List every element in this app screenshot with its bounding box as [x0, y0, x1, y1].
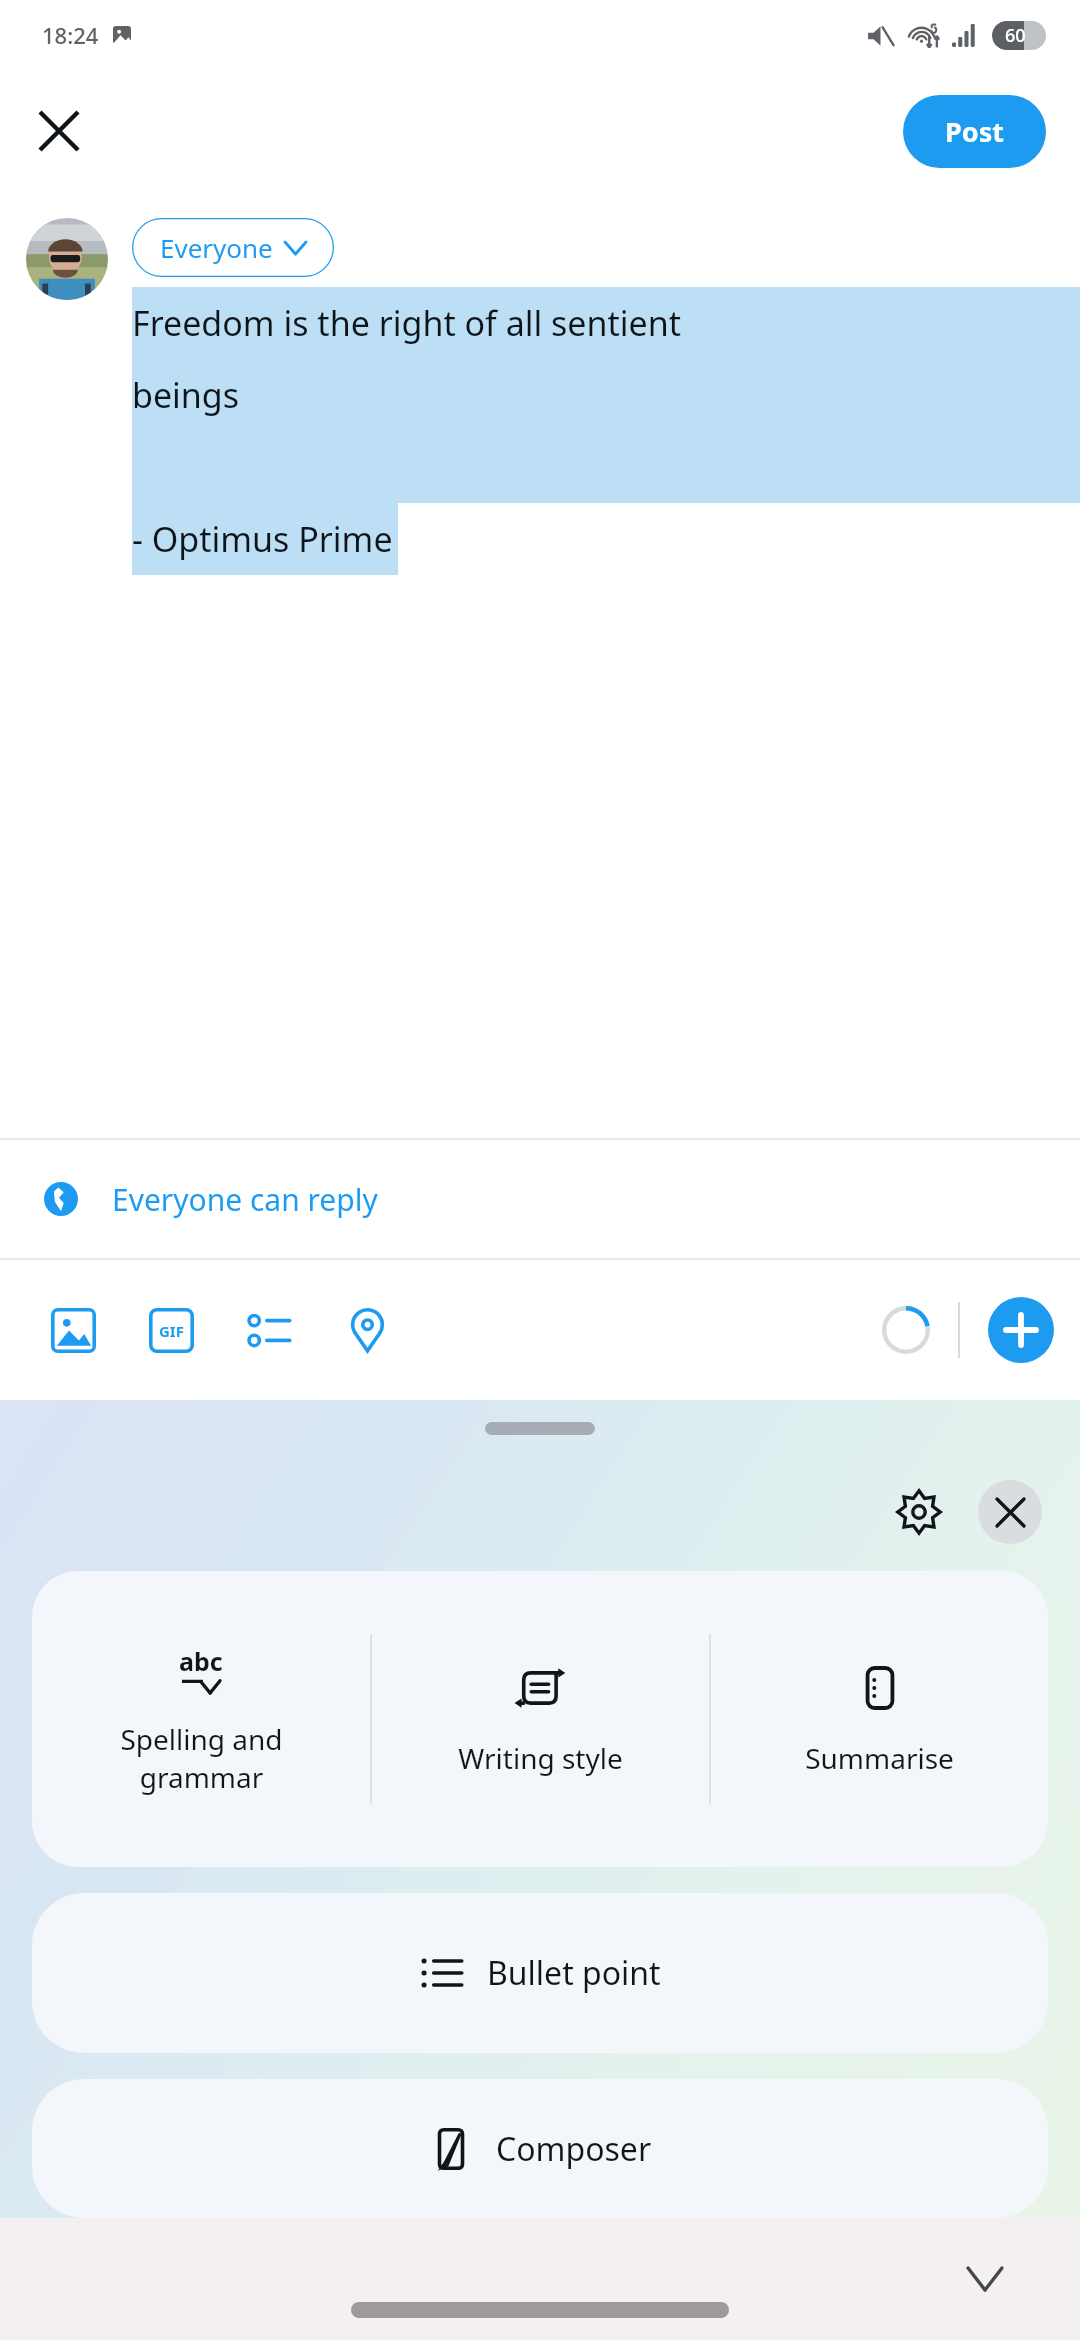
button[interactable]: Bullet point [32, 1893, 1048, 2053]
button[interactable]: Close panel [978, 1480, 1042, 1544]
button[interactable]: Add GIF [122, 1281, 220, 1379]
staticText: GIF [159, 1321, 184, 1341]
button[interactable]: Everyone [132, 218, 334, 277]
button[interactable]: abc [32, 1571, 370, 1867]
button[interactable]: Settings [882, 1475, 956, 1549]
button[interactable]: Summarise [711, 1571, 1048, 1867]
button[interactable]: Post [903, 95, 1046, 168]
staticText: - Optimus Prime [132, 516, 393, 562]
button[interactable]: Collapse keyboard [952, 2246, 1018, 2312]
button[interactable]: Profile photo [26, 218, 108, 300]
button[interactable]: Add poll [220, 1281, 318, 1379]
staticText: Post [945, 113, 1004, 150]
staticText: Freedom is the right of all sentient [132, 300, 682, 346]
staticText: 18:24 [42, 20, 99, 50]
staticText: 60 [1005, 23, 1026, 48]
staticText: Bullet point [487, 1951, 661, 1995]
staticText: beings [132, 372, 240, 418]
button[interactable]: Close [26, 98, 92, 164]
button[interactable]: Add location [318, 1281, 416, 1379]
staticText: Summarise [805, 1739, 954, 1777]
button[interactable]: Composer [32, 2079, 1048, 2218]
staticText: Spelling and grammar [120, 1720, 283, 1796]
staticText: Composer [496, 2127, 652, 2171]
staticText: abc [179, 1644, 223, 1678]
staticText: Writing style [458, 1739, 623, 1777]
button[interactable]: Everyone can reply [0, 1140, 1080, 1258]
button[interactable]: Character count [866, 1290, 946, 1370]
staticText: Everyone can reply [112, 1179, 378, 1220]
staticText: Everyone [160, 230, 273, 265]
button[interactable]: Add photo [24, 1281, 122, 1379]
button[interactable]: Writing style [372, 1571, 709, 1867]
button[interactable]: Add post [988, 1297, 1054, 1363]
